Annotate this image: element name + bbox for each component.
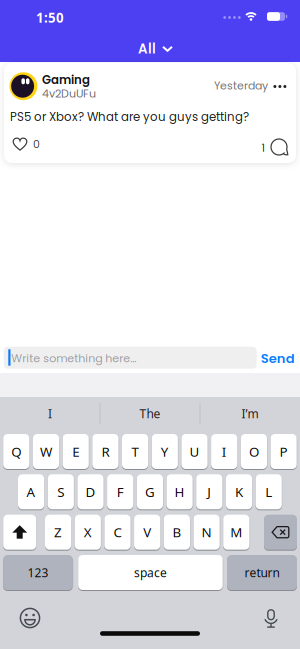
button[interactable]: Send — [261, 349, 295, 368]
staticText: I — [222, 443, 227, 460]
button[interactable]: Q — [3, 434, 29, 469]
staticText: M — [230, 523, 242, 541]
button[interactable]: More options — [273, 85, 286, 88]
button[interactable]: Like — [12, 136, 40, 152]
button[interactable]: Emoji — [19, 607, 40, 628]
button[interactable]: M — [223, 515, 249, 550]
staticText: G — [145, 483, 155, 501]
staticText: U — [189, 443, 199, 460]
button[interactable]: Y — [152, 434, 178, 469]
button[interactable]: W — [33, 434, 59, 469]
staticText: 1:50 — [36, 9, 64, 26]
button[interactable]: N — [193, 515, 220, 550]
staticText: PS5 or Xbox? What are you guys getting? — [10, 109, 249, 125]
button[interactable]: return — [227, 555, 297, 590]
button[interactable]: S — [48, 474, 74, 509]
staticText: J — [207, 483, 211, 501]
staticText: E — [72, 443, 79, 460]
staticText: D — [85, 483, 95, 501]
button[interactable]: K — [226, 474, 252, 509]
staticText: L — [265, 483, 272, 501]
staticText: 0 — [33, 136, 40, 152]
staticText: All — [138, 39, 156, 58]
button[interactable]: X — [75, 515, 101, 550]
staticText: return — [244, 564, 279, 580]
staticText: Y — [161, 443, 169, 460]
staticText: Write something here... — [11, 351, 136, 366]
staticText: W — [40, 443, 52, 460]
staticText: Q — [11, 443, 21, 460]
staticText: Z — [54, 523, 62, 541]
button[interactable]: E — [63, 434, 89, 469]
button[interactable]: J — [196, 474, 222, 509]
button[interactable]: P — [270, 434, 297, 469]
staticText: I’m — [241, 405, 258, 421]
button[interactable]: space — [78, 555, 223, 590]
button[interactable]: I — [48, 405, 52, 421]
button[interactable]: Comments — [261, 138, 291, 157]
staticText: 123 — [27, 564, 48, 580]
button[interactable]: Filter posts — [138, 39, 173, 58]
staticText: Gaming — [42, 72, 90, 88]
button[interactable]: A — [18, 474, 44, 509]
staticText: R — [101, 443, 109, 460]
button[interactable]: L — [256, 474, 282, 509]
button[interactable]: U — [181, 434, 208, 469]
button[interactable]: D — [77, 474, 104, 509]
staticText: P — [280, 443, 288, 460]
button[interactable]: Write something here — [4, 347, 257, 369]
button[interactable]: The — [139, 405, 160, 421]
button[interactable]: Shift — [3, 515, 36, 550]
button[interactable]: I’m — [241, 405, 258, 421]
staticText: T — [132, 443, 139, 460]
staticText: N — [202, 523, 212, 541]
staticText: S — [57, 483, 64, 501]
button[interactable]: V — [134, 515, 160, 550]
button[interactable]: F — [107, 474, 133, 509]
staticText: H — [175, 483, 185, 501]
button[interactable]: Gaming — [4, 63, 296, 163]
button[interactable]: T — [122, 434, 148, 469]
staticText: F — [117, 483, 124, 501]
button[interactable]: 123 — [3, 555, 73, 590]
staticText: I — [48, 405, 52, 421]
staticText: 4v2DuUFu — [42, 86, 96, 101]
staticText: Yesterday — [214, 78, 268, 93]
staticText: space — [134, 564, 167, 580]
staticText: A — [27, 483, 36, 501]
staticText: O — [249, 443, 259, 460]
staticText: V — [143, 523, 151, 541]
staticText: Send — [261, 349, 295, 368]
button[interactable]: B — [164, 515, 190, 550]
button[interactable]: R — [92, 434, 118, 469]
staticText: B — [172, 523, 181, 541]
staticText: The — [139, 405, 160, 421]
button[interactable]: I — [211, 434, 237, 469]
button[interactable]: C — [104, 515, 131, 550]
staticText: K — [235, 483, 243, 501]
staticText: C — [113, 523, 121, 541]
staticText: 1 — [261, 140, 264, 156]
button[interactable]: Delete — [264, 515, 297, 550]
button[interactable]: Z — [45, 515, 71, 550]
button[interactable]: O — [241, 434, 267, 469]
button[interactable]: G — [137, 474, 163, 509]
button[interactable]: H — [166, 474, 193, 509]
button[interactable]: Dictation — [264, 607, 278, 627]
staticText: X — [84, 523, 92, 541]
